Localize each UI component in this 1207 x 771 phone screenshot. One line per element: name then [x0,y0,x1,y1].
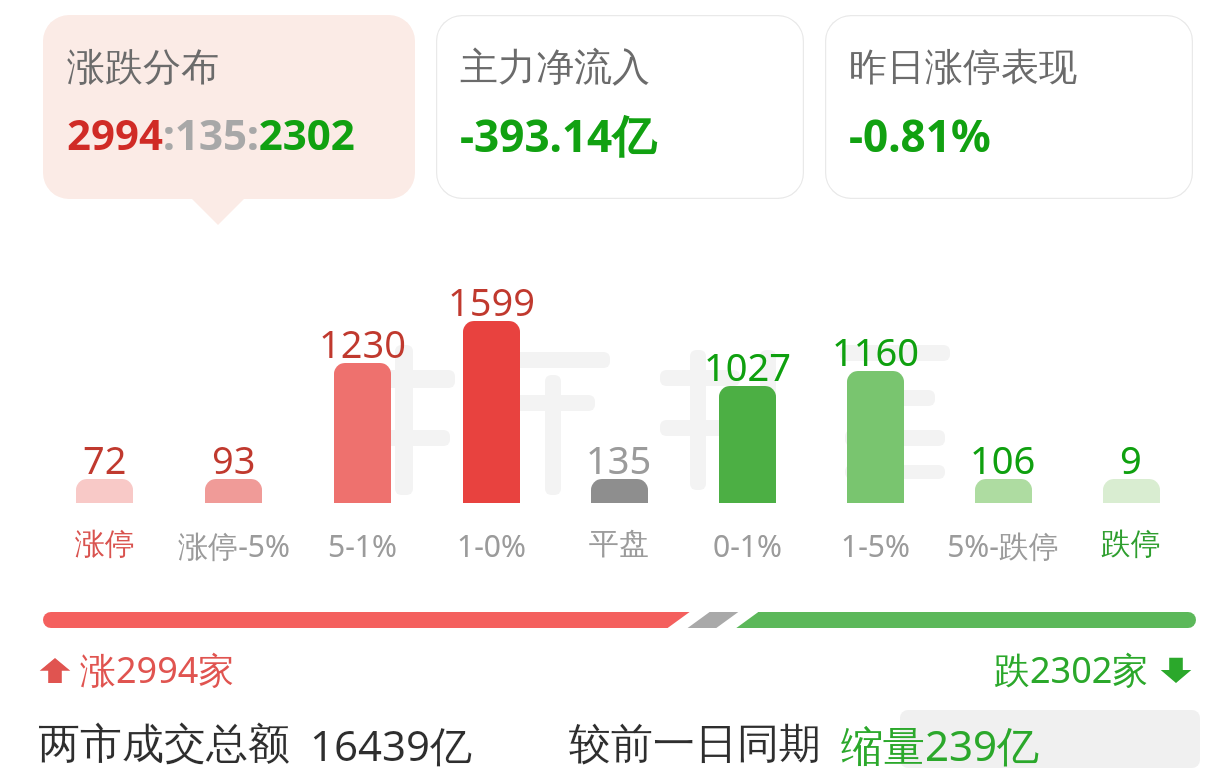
button[interactable]: 1027 [683,250,811,570]
button[interactable]: 1160 [811,250,939,570]
staticText: 跌2302家 [994,645,1149,694]
staticText: 平盘 [589,525,649,563]
other: Advancing [38,653,72,687]
button[interactable]: 72 [40,250,169,570]
staticText: 涨停-5% [178,525,290,566]
button[interactable]: 1230 [298,250,427,570]
button[interactable]: 主力净流入 [436,15,804,199]
staticText: 跌停 [1101,525,1161,563]
staticText: 5-1% [328,525,397,566]
button[interactable]: 9 [1067,250,1195,570]
staticText: 9 [1120,433,1142,479]
button[interactable]: 106 [939,250,1067,570]
staticText: 1027 [704,340,791,386]
staticText: 72 [83,433,127,479]
staticText: 较前一日同期 [569,718,821,771]
staticText: -393.14亿 [460,105,657,165]
button[interactable]: 昨日涨停表现 [825,15,1193,199]
staticText: 1-0% [457,525,526,566]
button[interactable]: 135 [555,250,683,570]
staticText: 5%-跌停 [947,525,1059,566]
staticText: 135 [586,433,652,479]
staticText: 两市成交总额 [38,718,290,771]
staticText: 1160 [832,325,919,371]
staticText: 0-1% [713,525,782,566]
button[interactable]: Advancing [38,645,235,694]
button[interactable]: 跌2302家 [994,645,1193,694]
staticText: 93 [212,433,256,479]
staticText: 106 [970,433,1036,479]
staticText: 昨日涨停表现 [849,43,1077,91]
button[interactable]: 93 [169,250,298,570]
staticText: 主力净流入 [460,43,650,91]
staticText: 1-5% [841,525,910,566]
staticText: 16439亿 [310,716,473,771]
staticText: 1230 [319,317,406,363]
staticText: 缩量239亿 [841,716,1040,771]
other: Declining [1159,653,1193,687]
staticText: 涨跌分布 [67,43,219,91]
staticText: 2994:135:2302 [67,105,355,162]
staticText: 1599 [448,275,535,321]
staticText: 涨停 [75,525,135,563]
staticText: -0.81% [849,105,991,165]
button[interactable]: 1599 [427,250,555,570]
button[interactable]: 涨跌分布 [43,15,415,199]
staticText: 涨2994家 [80,645,235,694]
